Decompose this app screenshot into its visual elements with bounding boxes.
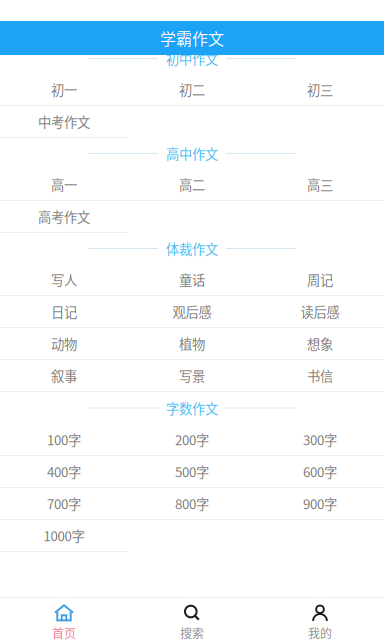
button[interactable]: 100字 [0, 424, 128, 456]
staticText: 观后感 [172, 302, 211, 321]
staticText: 高中作文 [166, 144, 218, 163]
staticText: 100字 [47, 430, 81, 449]
button[interactable]: 我的 [256, 597, 384, 640]
staticText: 高三 [307, 175, 333, 194]
button[interactable]: 童话 [128, 264, 256, 296]
staticText: 想象 [307, 334, 333, 353]
staticText: 植物 [179, 334, 205, 353]
button[interactable]: 想象 [256, 328, 384, 360]
staticText: 动物 [51, 334, 77, 353]
staticText: 200字 [175, 430, 209, 449]
staticText: 写人 [51, 270, 77, 289]
button[interactable]: 高二 [128, 169, 256, 201]
button[interactable]: 写景 [128, 360, 256, 392]
staticText: 搜索 [180, 624, 204, 640]
staticText: 高考作文 [38, 207, 90, 226]
button[interactable]: 读后感 [256, 296, 384, 328]
staticText: 书信 [307, 366, 333, 385]
staticText: 800字 [175, 494, 209, 513]
staticText: 初三 [307, 80, 333, 99]
button[interactable]: 高三 [256, 169, 384, 201]
button[interactable]: 700字 [0, 488, 128, 520]
button[interactable]: 900字 [256, 488, 384, 520]
staticText: 首页 [52, 624, 76, 640]
staticText: 初二 [179, 80, 205, 99]
staticText: 700字 [47, 494, 81, 513]
button[interactable]: 500字 [128, 456, 256, 488]
staticText: 中考作文 [38, 112, 90, 131]
button[interactable]: 200字 [128, 424, 256, 456]
button[interactable]: 高考作文 [0, 201, 128, 233]
staticText: 初一 [51, 80, 77, 99]
button[interactable]: 搜索 [128, 597, 256, 640]
button[interactable]: 300字 [256, 424, 384, 456]
staticText: 写景 [179, 366, 205, 385]
button[interactable]: 400字 [0, 456, 128, 488]
button[interactable]: 600字 [256, 456, 384, 488]
staticText: 字数作文 [166, 398, 218, 418]
staticText: 1000字 [43, 526, 84, 545]
button[interactable]: 中考作文 [0, 106, 128, 138]
button[interactable]: 初三 [256, 74, 384, 106]
staticText: 读后感 [300, 302, 339, 321]
staticText: 日记 [51, 302, 77, 321]
staticText: 500字 [175, 462, 209, 481]
button[interactable]: 动物 [0, 328, 128, 360]
button[interactable]: 初二 [128, 74, 256, 106]
staticText: 高二 [179, 175, 205, 194]
staticText: 我的 [308, 624, 332, 640]
staticText: 高一 [51, 175, 77, 194]
button[interactable]: 写人 [0, 264, 128, 296]
button[interactable]: 植物 [128, 328, 256, 360]
staticText: 体裁作文 [166, 239, 218, 258]
staticText: 学霸作文 [160, 26, 224, 50]
button[interactable]: 观后感 [128, 296, 256, 328]
button[interactable]: 800字 [128, 488, 256, 520]
staticText: 初中作文 [166, 49, 218, 68]
button[interactable]: 1000字 [0, 520, 128, 552]
staticText: 300字 [303, 430, 337, 449]
button[interactable]: 叙事 [0, 360, 128, 392]
button[interactable]: 初一 [0, 74, 128, 106]
staticText: 童话 [179, 270, 205, 289]
staticText: 叙事 [51, 366, 77, 385]
staticText: 周记 [307, 270, 333, 289]
staticText: 900字 [303, 494, 337, 513]
button[interactable]: 周记 [256, 264, 384, 296]
button[interactable]: 日记 [0, 296, 128, 328]
staticText: 400字 [47, 462, 81, 481]
button[interactable]: 高一 [0, 169, 128, 201]
staticText: 600字 [303, 462, 337, 481]
button[interactable]: 首页 [0, 597, 128, 640]
button[interactable]: 书信 [256, 360, 384, 392]
